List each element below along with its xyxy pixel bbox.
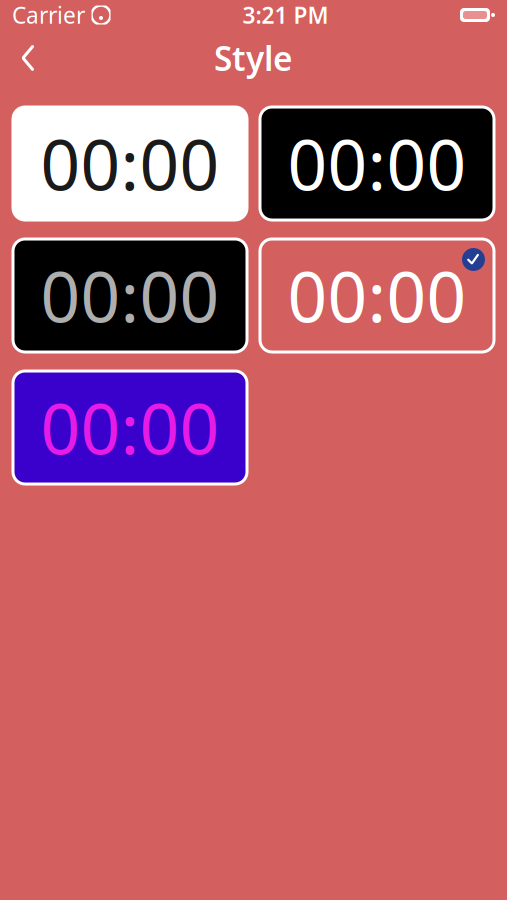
staticText: 00:00 — [287, 249, 466, 342]
button[interactable]: Timer style — [13, 371, 247, 484]
staticText: 00:00 — [287, 117, 466, 210]
staticText: Carrier — [12, 0, 85, 30]
staticText: 00:00 — [40, 381, 219, 474]
staticText: Style — [214, 36, 293, 80]
button[interactable]: Timer style — [260, 107, 494, 220]
button[interactable]: Timer style, selected — [260, 239, 494, 352]
button[interactable]: Timer style — [13, 107, 247, 220]
staticText: 00:00 — [40, 249, 219, 342]
staticText: 00:00 — [40, 117, 219, 210]
staticText: 3:21 PM — [242, 0, 328, 30]
button[interactable]: Timer style — [13, 239, 247, 352]
button[interactable]: Back — [6, 36, 50, 80]
